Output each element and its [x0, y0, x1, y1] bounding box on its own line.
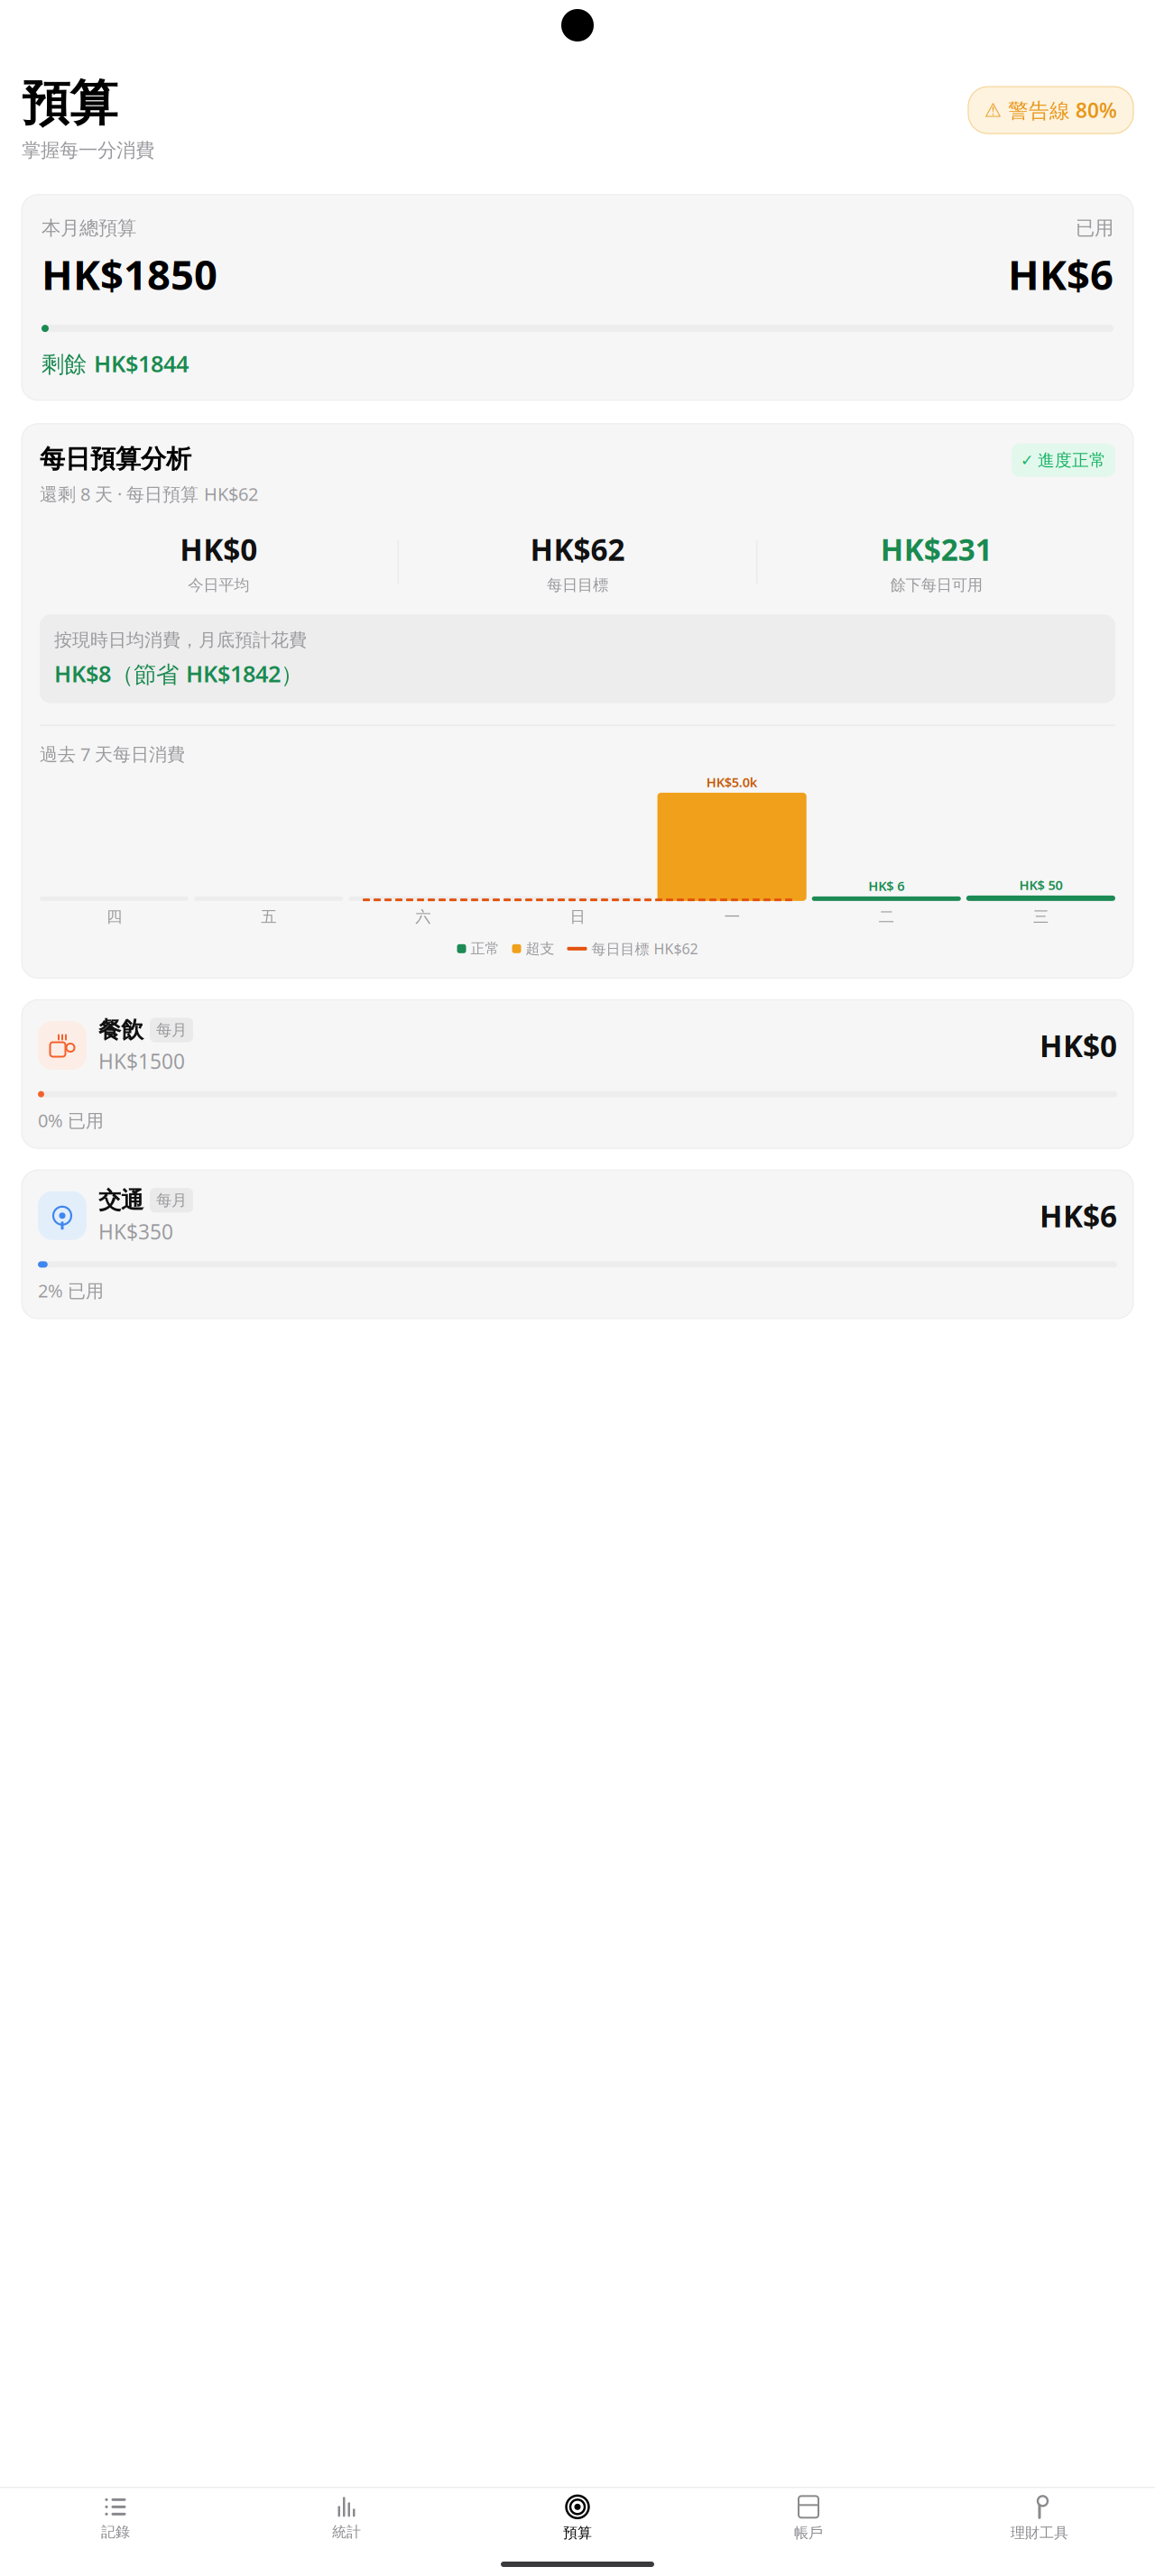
staticText: HK$5.0k — [706, 773, 758, 791]
staticText: HK$6 — [1008, 247, 1113, 301]
staticText: 每月 — [156, 1191, 187, 1210]
staticText: 每日目標 HK$62 — [591, 939, 698, 958]
staticText: HK$ 6 — [868, 877, 904, 895]
staticText: 每日目標 — [547, 575, 608, 595]
staticText: HK$0 — [180, 529, 257, 569]
staticText: 五 — [261, 907, 276, 926]
staticText: 剩餘 HK$1844 — [42, 348, 189, 379]
staticText: 每日預算分析 — [40, 444, 191, 475]
button[interactable]: ⚠ — [968, 87, 1133, 134]
staticText: ⚠ — [984, 99, 1002, 121]
button[interactable]: 預算 — [462, 2488, 693, 2542]
staticText: HK$231 — [880, 529, 992, 569]
staticText: 預算 — [563, 2524, 592, 2542]
staticText: HK$0 — [1039, 1025, 1117, 1065]
staticText: 0% 已用 — [38, 1108, 104, 1132]
staticText: HK$1500 — [98, 1048, 185, 1075]
button[interactable]: 交通 — [22, 1170, 1133, 1319]
staticText: 餘下每日可用 — [890, 575, 982, 595]
staticText: ✓ — [1021, 451, 1034, 469]
staticText: 記錄 — [101, 2523, 130, 2541]
staticText: 四 — [107, 907, 122, 926]
staticText: 三 — [1033, 907, 1048, 926]
staticText: HK$8（節省 HK$1842） — [54, 658, 303, 689]
staticText: 警告線 80% — [1008, 97, 1117, 124]
staticText: 餐飲 — [98, 1016, 143, 1044]
button[interactable]: 餐飲 — [22, 1000, 1133, 1148]
button[interactable]: 帳戶 — [693, 2488, 924, 2542]
staticText: 一 — [724, 907, 740, 926]
staticText: 2% 已用 — [38, 1278, 104, 1302]
staticText: 掌握每一分消費 — [22, 138, 154, 162]
staticText: 六 — [415, 907, 431, 926]
staticText: 超支 — [526, 940, 554, 958]
staticText: HK$1850 — [42, 247, 217, 301]
button[interactable]: 理財工具 — [924, 2488, 1155, 2542]
staticText: HK$62 — [530, 529, 625, 569]
staticText: 理財工具 — [1011, 2524, 1068, 2542]
staticText: 統計 — [332, 2523, 361, 2541]
staticText: 交通 — [98, 1186, 143, 1214]
staticText: 正常 — [471, 940, 499, 958]
staticText: HK$6 — [1039, 1196, 1117, 1236]
staticText: 二 — [879, 907, 894, 926]
staticText: HK$ 50 — [1019, 876, 1062, 894]
staticText: HK$350 — [98, 1218, 173, 1245]
staticText: 帳戶 — [794, 2524, 823, 2542]
button[interactable]: 統計 — [231, 2489, 462, 2541]
staticText: 進度正常 — [1038, 450, 1106, 471]
staticText: 按現時日均消費，月底預計花費 — [54, 629, 307, 651]
button[interactable]: 記錄 — [0, 2489, 231, 2541]
staticText: 已用 — [1076, 216, 1113, 240]
staticText: 每月 — [156, 1020, 187, 1040]
staticText: 過去 7 天每日消費 — [40, 742, 185, 766]
staticText: 本月總預算 — [42, 216, 136, 240]
staticText: 還剩 8 天 · 每日預算 HK$62 — [40, 482, 258, 506]
staticText: 日 — [570, 907, 585, 926]
staticText: 預算 — [22, 74, 117, 133]
staticText: 今日平均 — [188, 575, 249, 595]
